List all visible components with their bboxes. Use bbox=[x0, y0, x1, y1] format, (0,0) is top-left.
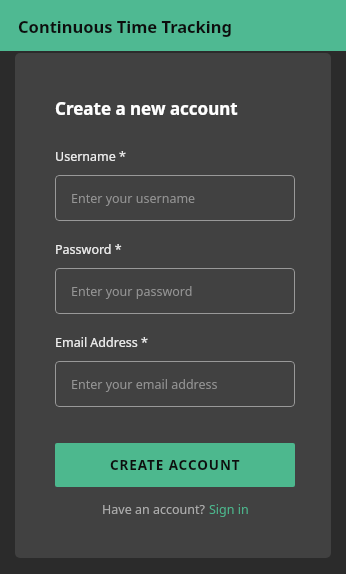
staticText: CREATE ACCOUNT bbox=[110, 456, 241, 474]
staticText: Password * bbox=[55, 241, 122, 258]
button[interactable]: CREATE ACCOUNT bbox=[55, 443, 295, 487]
staticText: Create a new account bbox=[55, 97, 238, 120]
staticText: Username * bbox=[55, 148, 126, 165]
staticText: Enter your email address bbox=[71, 376, 218, 393]
button[interactable]: Sign in bbox=[209, 501, 249, 518]
staticText: Enter your username bbox=[71, 190, 196, 207]
staticText: Sign in bbox=[209, 501, 249, 518]
button[interactable]: Email address input bbox=[55, 361, 295, 407]
staticText: Enter your password bbox=[71, 283, 193, 300]
button[interactable]: Username input bbox=[55, 175, 295, 221]
staticText: Continuous Time Tracking bbox=[18, 15, 232, 37]
button[interactable]: Password input bbox=[55, 268, 295, 314]
staticText: Have an account? bbox=[102, 501, 209, 518]
staticText: Email Address * bbox=[55, 334, 148, 351]
